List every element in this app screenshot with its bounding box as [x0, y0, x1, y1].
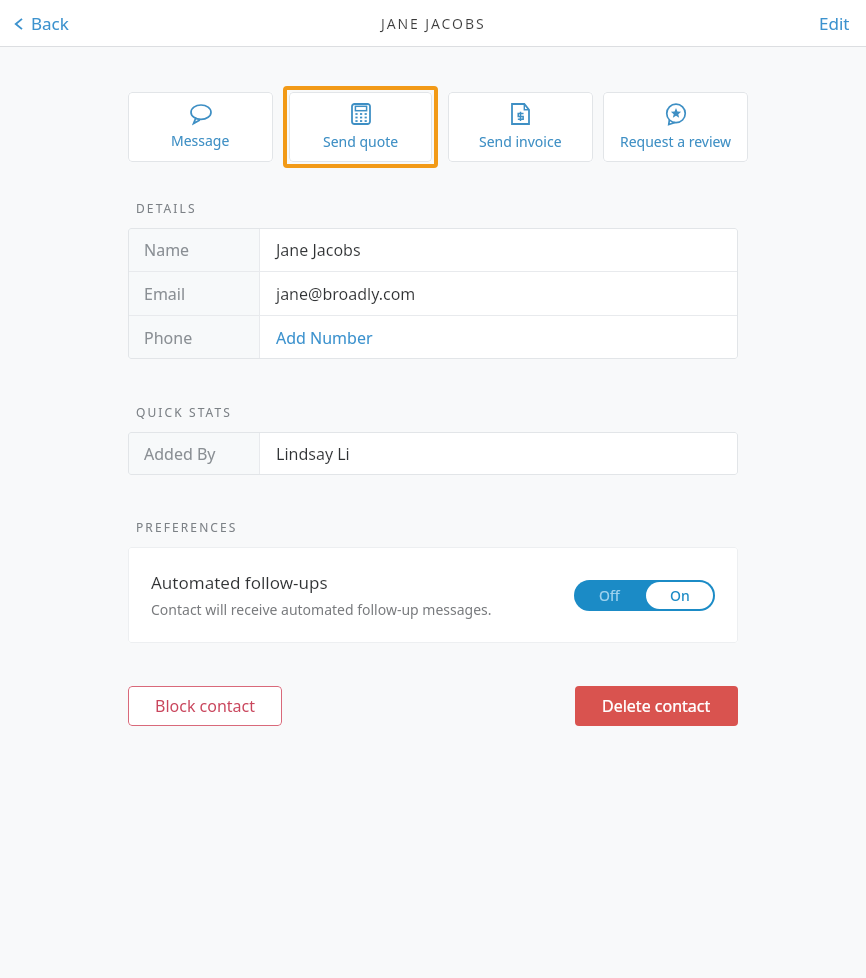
staticText: JANE JACOBS: [381, 14, 486, 33]
staticText: Email: [144, 283, 186, 305]
button[interactable]: Added By: [128, 432, 738, 475]
staticText: Added By: [144, 443, 216, 465]
staticText: Name: [144, 239, 190, 261]
button[interactable]: Phone: [128, 316, 738, 359]
button[interactable]: Request a review: [603, 92, 748, 162]
staticText: Lindsay Li: [276, 443, 350, 465]
staticText: Send quote: [323, 132, 399, 151]
button[interactable]: Back: [10, 6, 73, 41]
staticText: PREFERENCES: [136, 519, 238, 535]
button[interactable]: Send quote: [289, 92, 432, 162]
staticText: Phone: [144, 327, 193, 349]
staticText: jane@broadly.com: [276, 283, 416, 305]
button[interactable]: Send invoice: [448, 92, 593, 162]
staticText: Back: [31, 12, 69, 35]
button[interactable]: Add Number: [276, 327, 373, 349]
button[interactable]: Email: [128, 272, 738, 315]
button[interactable]: Name: [128, 228, 738, 271]
staticText: Add Number: [276, 327, 373, 349]
staticText: Send invoice: [479, 132, 562, 151]
button[interactable]: Message: [128, 92, 273, 162]
staticText: On: [670, 586, 690, 605]
staticText: Jane Jacobs: [276, 239, 361, 261]
button[interactable]: Block contact: [128, 686, 282, 726]
staticText: Contact will receive automated follow-up…: [151, 600, 492, 619]
staticText: DETAILS: [136, 200, 197, 216]
button[interactable]: Delete contact: [575, 686, 738, 726]
staticText: Automated follow-ups: [151, 571, 328, 594]
button[interactable]: Off: [574, 580, 715, 611]
staticText: Off: [599, 586, 620, 605]
staticText: QUICK STATS: [136, 404, 232, 420]
button[interactable]: Edit: [815, 6, 854, 41]
staticText: Request a review: [620, 132, 732, 151]
staticText: Message: [171, 131, 230, 150]
staticText: Block contact: [155, 695, 256, 717]
staticText: Delete contact: [602, 695, 711, 717]
staticText: Edit: [819, 12, 850, 35]
